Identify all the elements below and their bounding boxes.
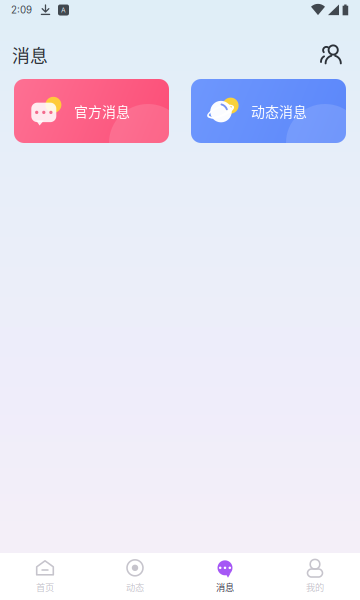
staticText: 消息 <box>12 42 48 68</box>
staticText: A <box>61 6 66 14</box>
button[interactable]: Contacts <box>316 40 346 70</box>
staticText: 2:09 <box>11 4 32 16</box>
staticText: 官方消息 <box>74 101 130 121</box>
staticText: 首页 <box>36 580 54 594</box>
button[interactable]: 动态 <box>90 553 180 600</box>
button[interactable]: 我的 <box>270 553 360 600</box>
staticText: 消息 <box>216 580 234 594</box>
button[interactable]: 动态消息 <box>191 79 346 143</box>
button[interactable]: 消息 <box>180 553 270 600</box>
staticText: 我的 <box>306 580 324 594</box>
button[interactable]: 首页 <box>0 553 90 600</box>
staticText: 动态消息 <box>251 101 307 121</box>
staticText: 动态 <box>126 580 144 594</box>
button[interactable]: 官方消息 <box>14 79 169 143</box>
